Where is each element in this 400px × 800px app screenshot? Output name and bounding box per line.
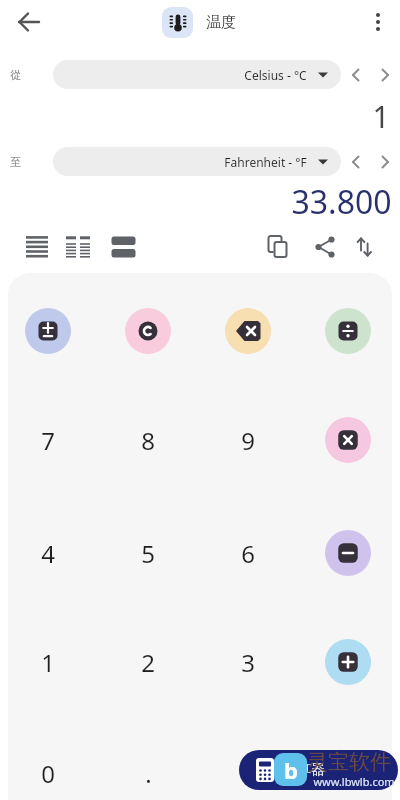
staticText: .: [145, 757, 152, 790]
button[interactable]: 1: [16, 642, 80, 682]
staticText: 1: [41, 646, 55, 679]
button[interactable]: 8: [116, 420, 180, 460]
staticText: 计算器: [283, 761, 325, 779]
staticText: 1: [372, 96, 390, 134]
button[interactable]: [310, 230, 340, 264]
staticText: 至: [10, 155, 21, 169]
button[interactable]: [325, 530, 371, 576]
button[interactable]: 温度: [162, 0, 236, 44]
button[interactable]: [358, 2, 398, 42]
button[interactable]: [225, 308, 271, 354]
staticText: 6: [241, 537, 255, 570]
button[interactable]: [125, 308, 171, 354]
staticText: 9: [241, 424, 255, 457]
button[interactable]: 9: [216, 420, 280, 460]
button[interactable]: [345, 147, 367, 176]
button[interactable]: [62, 230, 92, 264]
button[interactable]: [22, 230, 52, 264]
staticText: b: [284, 755, 298, 785]
button[interactable]: 5: [116, 533, 180, 573]
staticText: www.lbwlb.com: [313, 774, 395, 789]
button[interactable]: 7: [16, 420, 80, 460]
button[interactable]: [9, 2, 49, 42]
button[interactable]: [374, 147, 396, 176]
button[interactable]: Celsius - °C: [53, 60, 341, 89]
button[interactable]: 计算器: [239, 750, 398, 790]
button[interactable]: 4: [16, 533, 80, 573]
staticText: 3: [241, 646, 255, 679]
button[interactable]: 3: [216, 642, 280, 682]
staticText: 2: [141, 646, 155, 679]
staticText: Fahrenheit - °F: [224, 154, 307, 170]
button[interactable]: [374, 60, 396, 89]
staticText: 7: [41, 424, 55, 457]
staticText: 從: [10, 68, 21, 82]
button[interactable]: [349, 230, 379, 264]
staticText: 8: [141, 424, 155, 457]
button[interactable]: 2: [116, 642, 180, 682]
button[interactable]: .: [116, 753, 180, 793]
staticText: 0: [41, 757, 55, 790]
staticText: 4: [41, 537, 55, 570]
staticText: 灵宝软件: [307, 749, 391, 773]
button[interactable]: 0: [16, 753, 80, 793]
button[interactable]: [108, 230, 138, 264]
button[interactable]: Fahrenheit - °F: [53, 147, 341, 176]
staticText: 5: [141, 537, 155, 570]
button[interactable]: [325, 417, 371, 463]
button[interactable]: [325, 639, 371, 685]
button[interactable]: [325, 308, 371, 354]
button[interactable]: [264, 230, 294, 264]
staticText: Celsius - °C: [244, 67, 307, 83]
staticText: 温度: [206, 13, 236, 32]
staticText: 33.800: [291, 180, 392, 222]
button[interactable]: 6: [216, 533, 280, 573]
button[interactable]: [25, 308, 71, 354]
button[interactable]: [345, 60, 367, 89]
